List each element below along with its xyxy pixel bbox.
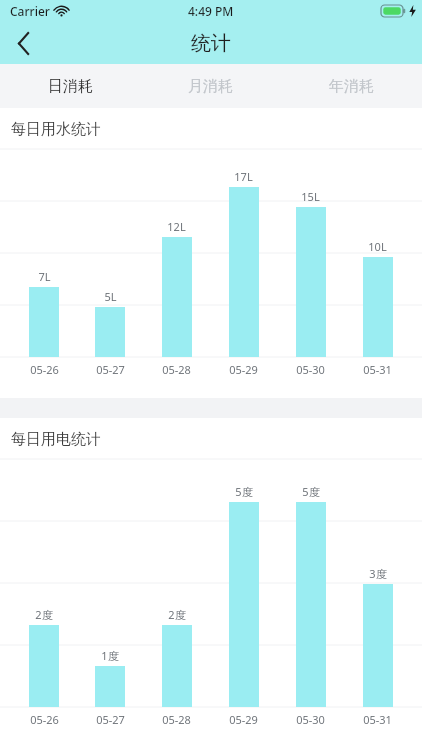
- button[interactable]: 日消耗: [0, 64, 140, 108]
- staticText: 2度: [35, 607, 53, 622]
- button[interactable]: 年消耗: [281, 64, 422, 108]
- staticText: 4:49 PM: [188, 3, 234, 19]
- staticText: 统计: [191, 31, 231, 56]
- staticText: 5L: [104, 289, 117, 304]
- staticText: 5度: [235, 484, 253, 499]
- staticText: 05-29: [229, 712, 258, 727]
- staticText: 每日用电统计: [11, 430, 101, 449]
- staticText: 05-29: [229, 362, 258, 377]
- button[interactable]: Back: [0, 22, 48, 64]
- staticText: 05-31: [363, 362, 392, 377]
- staticText: 05-26: [30, 712, 59, 727]
- staticText: 15L: [301, 189, 320, 204]
- staticText: 2度: [168, 607, 186, 622]
- staticText: 12L: [167, 219, 186, 234]
- staticText: 05-26: [30, 362, 59, 377]
- staticText: 05-27: [96, 712, 125, 727]
- staticText: 7L: [38, 269, 51, 284]
- staticText: 月消耗: [188, 77, 233, 96]
- staticText: 05-31: [363, 712, 392, 727]
- staticText: 年消耗: [329, 77, 374, 96]
- staticText: 05-28: [162, 362, 191, 377]
- button[interactable]: 月消耗: [140, 64, 281, 108]
- staticText: 05-30: [296, 712, 325, 727]
- staticText: 10L: [368, 239, 387, 254]
- staticText: 5度: [302, 484, 320, 499]
- staticText: 3度: [369, 566, 387, 581]
- staticText: 05-28: [162, 712, 191, 727]
- staticText: 日消耗: [48, 77, 93, 96]
- staticText: 17L: [234, 169, 253, 184]
- staticText: 1度: [101, 648, 119, 663]
- staticText: 05-30: [296, 362, 325, 377]
- staticText: 每日用水统计: [11, 120, 101, 139]
- staticText: 05-27: [96, 362, 125, 377]
- staticText: Carrier: [10, 3, 50, 19]
